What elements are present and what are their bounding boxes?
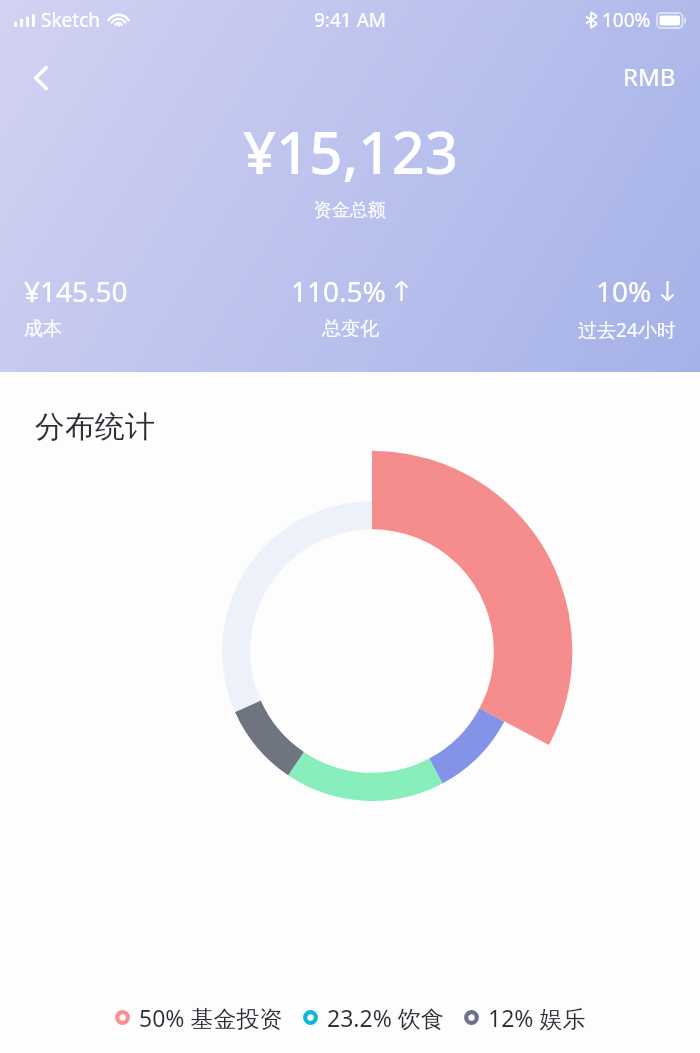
staticText: 成本 — [24, 317, 62, 341]
staticText: 12% 娱乐 — [488, 1002, 586, 1033]
staticText: 23.2% 饮食 — [327, 1002, 444, 1033]
staticText: 10% — [596, 272, 652, 310]
button[interactable]: 50% 基金投资 — [115, 996, 283, 1039]
staticText: ¥145.50 — [24, 272, 128, 310]
button[interactable]: ¥145.50 — [24, 272, 242, 341]
button[interactable]: RMB — [599, 50, 700, 103]
button[interactable]: Back — [14, 50, 70, 106]
staticText: Sketch — [41, 7, 101, 33]
staticText: 100% — [602, 7, 651, 33]
staticText: RMB — [623, 60, 676, 93]
staticText: 过去24小时 — [578, 317, 676, 343]
staticText: 分布统计 — [35, 408, 155, 446]
button[interactable]: 110.5% — [242, 272, 459, 341]
staticText: 110.5% — [291, 272, 386, 310]
button[interactable]: 10% — [459, 272, 676, 343]
staticText: 资金总额 — [314, 199, 386, 222]
button[interactable]: 23.2% 饮食 — [303, 996, 444, 1039]
staticText: 总变化 — [322, 317, 379, 341]
button[interactable]: 12% 娱乐 — [464, 996, 586, 1039]
staticText: 9:41 AM — [314, 7, 387, 33]
staticText: 50% 基金投资 — [139, 1002, 283, 1033]
staticText: ¥15,123 — [243, 112, 458, 191]
